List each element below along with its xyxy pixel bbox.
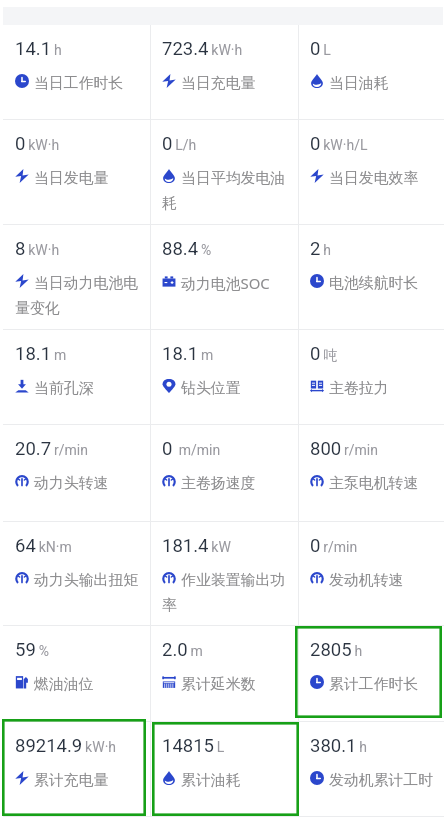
staticText: *动力头转速 [15, 469, 109, 494]
button[interactable]: 14815 L [150, 722, 298, 817]
staticText: *主泵电机转速 [310, 469, 419, 494]
staticText: 2.0 m [162, 639, 203, 661]
button[interactable]: 20.7 r/min [3, 425, 150, 522]
staticText: 89214.9 kW·h [15, 735, 117, 757]
button[interactable]: 723.4 kW·h [150, 25, 298, 120]
button[interactable]: 0 L [298, 25, 446, 120]
button[interactable]: 0 L/h [150, 120, 298, 225]
button[interactable]: 800 r/min [298, 425, 446, 522]
staticText: *累计充电量 [15, 766, 109, 791]
staticText: *累计油耗 [162, 766, 241, 791]
staticText: 20.7 r/min [15, 438, 88, 460]
staticText: 88.4 % [162, 238, 212, 260]
staticText: 800 r/min [310, 438, 378, 460]
staticText: 0 r/min [310, 535, 358, 557]
staticText: 0 吨 [310, 343, 338, 365]
staticText: 380.1 h [310, 735, 368, 757]
button[interactable]: 0 吨 [298, 330, 446, 425]
staticText: *当日平均发电油耗 [162, 164, 290, 214]
staticText: 723.4 kW·h [162, 38, 243, 60]
staticText: *动力电池SOC [162, 269, 270, 295]
staticText: *累计延米数 [162, 670, 256, 695]
button[interactable]: 380.1 h [298, 722, 446, 817]
staticText: 181.4 kW [162, 535, 231, 557]
staticText: *当日动力电池电量变化 [15, 269, 142, 319]
staticText: 18.1 m [15, 343, 67, 365]
staticText: 2805 h [310, 639, 363, 661]
staticText: *发动机累计工时 [310, 766, 434, 791]
button[interactable]: 2.0 m [150, 626, 298, 722]
staticText: 0 L [310, 38, 331, 60]
staticText: *燃油油位 [15, 670, 94, 695]
staticText: *作业装置输出功率 [162, 566, 290, 616]
staticText: *当日发电效率 [310, 164, 419, 189]
button[interactable]: 18.1 m [3, 330, 150, 425]
button[interactable]: 2 h [298, 225, 446, 330]
staticText: 0 kW·h/L [310, 133, 368, 155]
staticText: *当日充电量 [162, 69, 256, 94]
button[interactable]: 0 kW·h [3, 120, 150, 225]
staticText: *动力头输出扭矩 [15, 566, 139, 591]
staticText: 0 kW·h [15, 133, 60, 155]
staticText: 2 h [310, 238, 331, 260]
staticText: 64 kN·m [15, 535, 72, 557]
staticText: *当日油耗 [310, 69, 389, 94]
staticText: 0 L/h [162, 133, 197, 155]
staticText: *主卷拉力 [310, 374, 389, 399]
button[interactable]: 0 r/min [298, 522, 446, 626]
button[interactable]: 0 kW·h/L [298, 120, 446, 225]
button[interactable]: 8 kW·h [3, 225, 150, 330]
staticText: 0 m/min [162, 438, 221, 460]
staticText: *当日工作时长 [15, 69, 124, 94]
staticText: 14815 L [162, 735, 225, 757]
button[interactable]: 14.1 h [3, 25, 150, 120]
staticText: 14.1 h [15, 38, 62, 60]
staticText: *发动机转速 [310, 566, 404, 591]
button[interactable]: 64 kN·m [3, 522, 150, 626]
button[interactable]: 0 m/min [150, 425, 298, 522]
staticText: *累计工作时长 [310, 670, 419, 695]
button[interactable]: 18.1 m [150, 330, 298, 425]
staticText: *电池续航时长 [310, 269, 419, 294]
staticText: *当前孔深 [15, 374, 94, 399]
staticText: *当日发电量 [15, 164, 109, 189]
staticText: 18.1 m [162, 343, 214, 365]
staticText: *主卷扬速度 [162, 469, 256, 494]
button[interactable]: 2805 h [298, 626, 446, 722]
button[interactable]: 89214.9 kW·h [3, 722, 150, 817]
staticText: *钻头位置 [162, 374, 241, 399]
staticText: 59 % [15, 639, 49, 661]
button[interactable]: 59 % [3, 626, 150, 722]
staticText: 8 kW·h [15, 238, 60, 260]
button[interactable]: 181.4 kW [150, 522, 298, 626]
button[interactable]: 88.4 % [150, 225, 298, 330]
